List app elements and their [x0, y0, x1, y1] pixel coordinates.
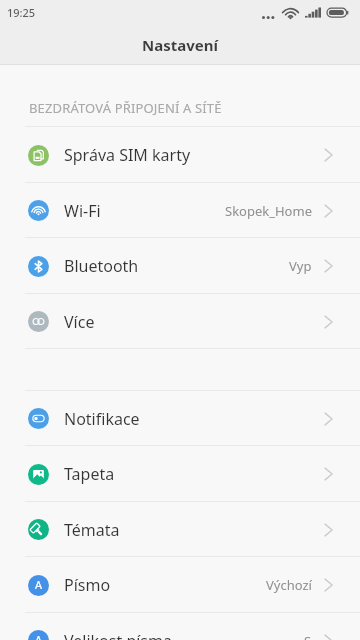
button[interactable]: A: [0, 557, 360, 613]
button[interactable]: A: [0, 613, 360, 640]
staticText: Notifikace: [64, 408, 140, 430]
button[interactable]: Správa SIM karty: [0, 127, 360, 183]
staticText: Správa SIM karty: [64, 144, 191, 166]
button[interactable]: Notifikace: [0, 391, 360, 446]
staticText: 19:25: [7, 5, 36, 20]
staticText: Tapeta: [64, 463, 115, 485]
staticText: S: [304, 632, 312, 640]
staticText: Vyp: [289, 257, 312, 275]
button[interactable]: Témata: [0, 502, 360, 557]
staticText: BEZDRÁTOVÁ PŘIPOJENÍ A SÍTĚ: [29, 99, 222, 117]
staticText: A: [35, 577, 43, 592]
staticText: Více: [64, 311, 95, 333]
button[interactable]: Více: [0, 294, 360, 349]
staticText: Písmo: [64, 574, 111, 596]
staticText: A: [35, 632, 43, 640]
staticText: Wi-Fi: [64, 200, 101, 222]
staticText: Velikost písma: [64, 630, 172, 640]
staticText: Bluetooth: [64, 255, 139, 277]
button[interactable]: Tapeta: [0, 446, 360, 502]
button[interactable]: Wi-Fi: [0, 183, 360, 238]
staticText: Výchozí: [266, 576, 312, 594]
staticText: Témata: [64, 519, 120, 541]
button[interactable]: Bluetooth: [0, 238, 360, 294]
staticText: Skopek_Home: [225, 202, 312, 220]
staticText: Nastavení: [142, 35, 218, 55]
